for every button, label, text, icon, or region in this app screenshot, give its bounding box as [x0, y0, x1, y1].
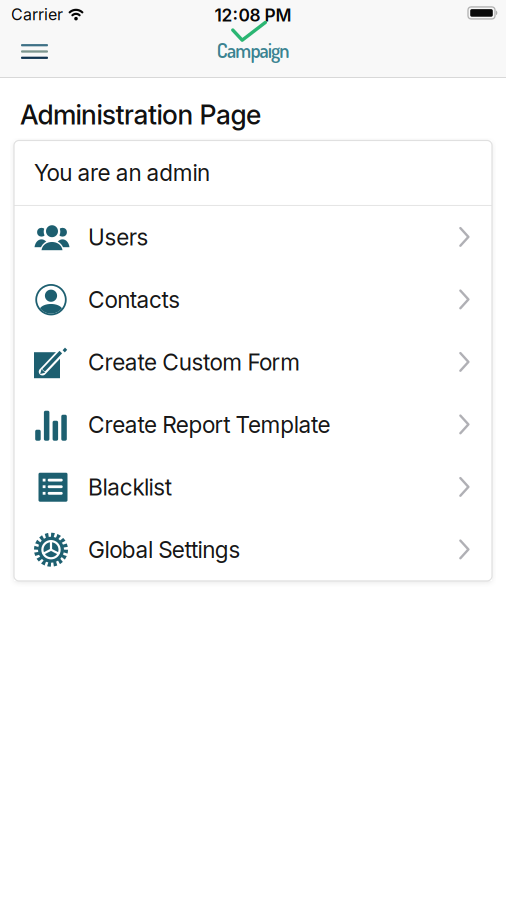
staticText: Campaign	[217, 37, 289, 63]
staticText: Global Settings	[88, 536, 240, 563]
button[interactable]: Create Custom Form	[14, 331, 492, 393]
staticText: Administration Page	[20, 99, 261, 130]
button[interactable]: Blacklist	[14, 456, 492, 518]
button[interactable]: Create Report Template	[14, 393, 492, 456]
button[interactable]: Users	[14, 206, 492, 268]
button[interactable]: Menu	[11, 34, 58, 69]
staticText: Users	[88, 224, 148, 250]
button[interactable]: Contacts	[14, 268, 492, 331]
staticText: Create Report Template	[88, 411, 331, 438]
staticText: Create Custom Form	[88, 349, 300, 375]
staticText: Blacklist	[88, 474, 172, 500]
staticText: Carrier	[11, 5, 63, 24]
staticText: 12:08 PM	[214, 5, 291, 25]
button[interactable]: Campaign	[193, 18, 313, 62]
button[interactable]: Global Settings	[14, 518, 492, 581]
staticText: Contacts	[88, 286, 180, 313]
staticText: You are an admin	[34, 159, 210, 186]
